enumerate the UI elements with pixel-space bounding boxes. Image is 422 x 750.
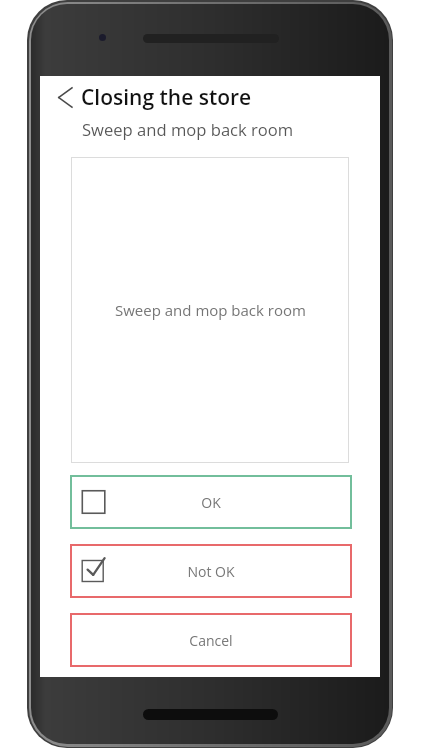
staticText: Not OK xyxy=(187,562,235,581)
button[interactable]: Back xyxy=(51,83,79,111)
staticText: Closing the store xyxy=(81,83,252,112)
other: Checked xyxy=(81,556,111,586)
button[interactable]: Cancel xyxy=(70,613,352,667)
staticText: Cancel xyxy=(189,631,233,650)
button[interactable]: Unchecked xyxy=(70,475,352,529)
staticText: OK xyxy=(201,493,221,512)
staticText: Sweep and mop back room xyxy=(115,300,306,320)
button[interactable]: Checked xyxy=(70,544,352,598)
other: Unchecked xyxy=(81,487,111,517)
staticText: Sweep and mop back room xyxy=(82,118,294,141)
